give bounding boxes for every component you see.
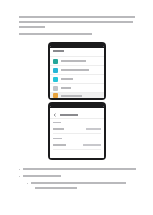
button[interactable] — [50, 142, 104, 147]
button[interactable] — [50, 75, 104, 83]
button[interactable] — [50, 126, 104, 131]
button[interactable] — [50, 93, 104, 98]
button[interactable]: Back — [50, 111, 104, 118]
button[interactable] — [50, 66, 104, 74]
button[interactable] — [50, 57, 104, 65]
button[interactable] — [50, 84, 104, 92]
